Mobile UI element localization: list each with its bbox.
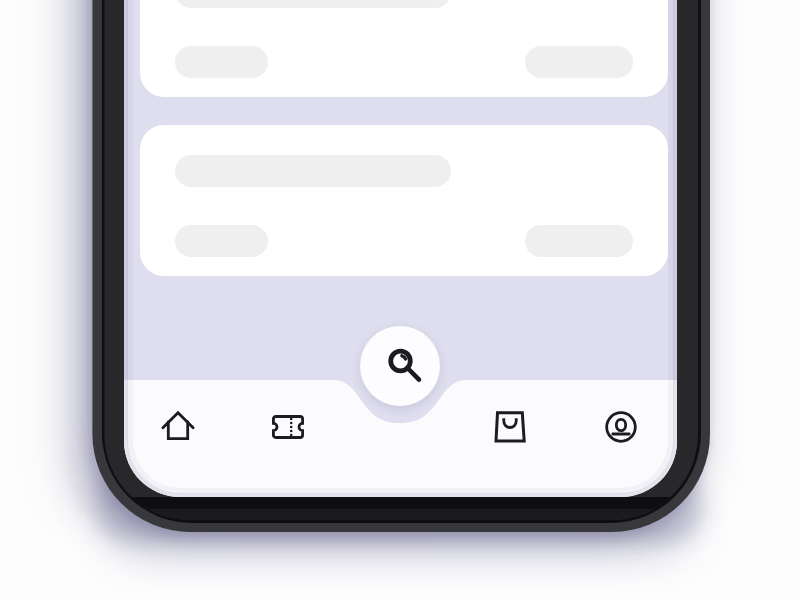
button[interactable] <box>140 0 668 97</box>
button[interactable] <box>360 326 440 406</box>
button[interactable] <box>486 403 534 451</box>
button[interactable] <box>140 125 668 276</box>
button[interactable] <box>154 403 202 451</box>
button[interactable] <box>264 403 312 451</box>
button[interactable] <box>597 403 645 451</box>
